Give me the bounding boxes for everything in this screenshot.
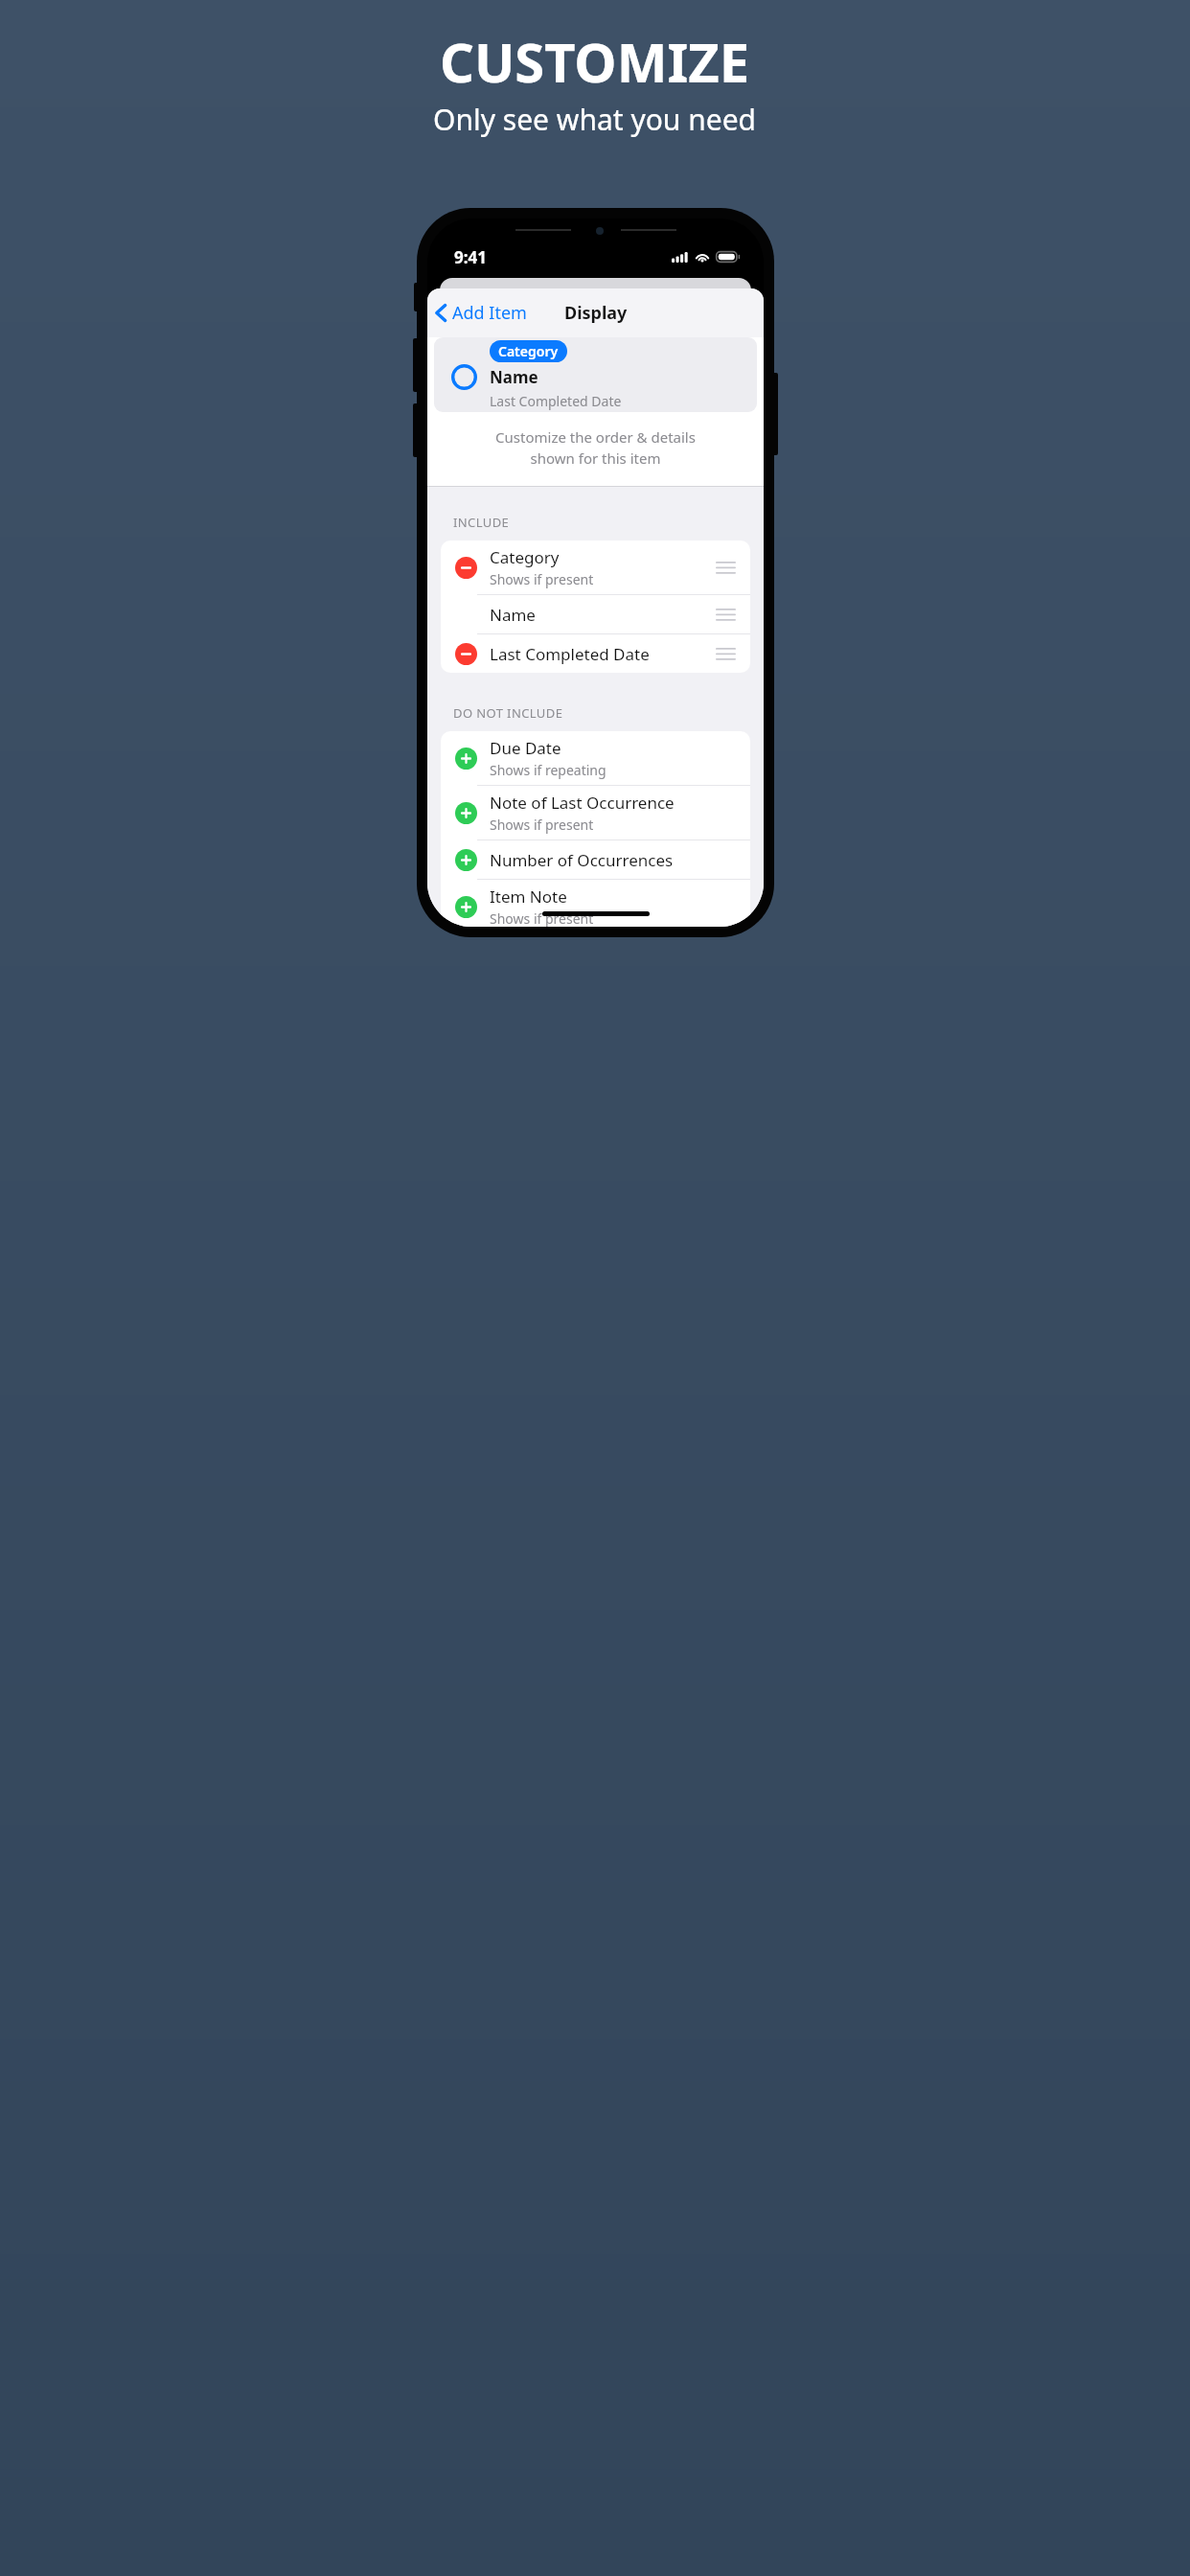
staticText: Note of Last Occurrence xyxy=(490,792,675,814)
other: Add Note of Last Occurrence xyxy=(455,802,477,824)
staticText: Add Item xyxy=(452,301,527,325)
button[interactable]: Add Item xyxy=(427,293,540,333)
other: Reorder Name xyxy=(716,609,736,621)
other: Reorder Last Completed Date xyxy=(716,648,736,660)
other: Remove Last Completed Date xyxy=(455,643,477,665)
button[interactable]: Add Due Date xyxy=(441,731,750,785)
other: Add Number of Occurrences xyxy=(455,849,477,871)
staticText: Name xyxy=(490,366,538,388)
button[interactable]: Remove Last Completed Date xyxy=(441,634,750,673)
staticText: Category xyxy=(498,342,559,360)
button[interactable]: Remove Category xyxy=(441,540,750,594)
other: Remove Category xyxy=(455,557,477,579)
staticText: Name xyxy=(490,604,536,626)
other: Complete item xyxy=(451,364,477,390)
staticText: Only see what you need xyxy=(433,100,757,139)
staticText: Shows if present xyxy=(490,816,594,834)
button[interactable]: Add Item Note xyxy=(441,880,750,927)
other: Add Item Note xyxy=(455,896,477,918)
staticText: Shows if present xyxy=(490,909,594,927)
staticText: CUSTOMIZE xyxy=(440,25,750,98)
staticText: Display xyxy=(564,301,628,325)
staticText: Item Note xyxy=(490,885,567,908)
staticText: INCLUDE xyxy=(453,514,510,531)
staticText: Shows if present xyxy=(490,570,594,588)
staticText: 9:41 xyxy=(454,246,487,268)
other: Reorder Category xyxy=(716,562,736,574)
staticText: Due Date xyxy=(490,737,561,759)
staticText: Last Completed Date xyxy=(490,643,650,665)
button[interactable]: Name xyxy=(441,595,750,633)
staticText: Last Completed Date xyxy=(490,392,622,410)
button[interactable]: Add Number of Occurrences xyxy=(441,840,750,879)
staticText: Shows if repeating xyxy=(490,761,606,779)
staticText: Number of Occurrences xyxy=(490,849,674,871)
other: Add Due Date xyxy=(455,747,477,770)
staticText: Customize the order & details shown for … xyxy=(427,427,764,469)
staticText: DO NOT INCLUDE xyxy=(453,704,563,722)
staticText: Category xyxy=(490,546,560,568)
button[interactable]: Add Note of Last Occurrence xyxy=(441,786,750,839)
